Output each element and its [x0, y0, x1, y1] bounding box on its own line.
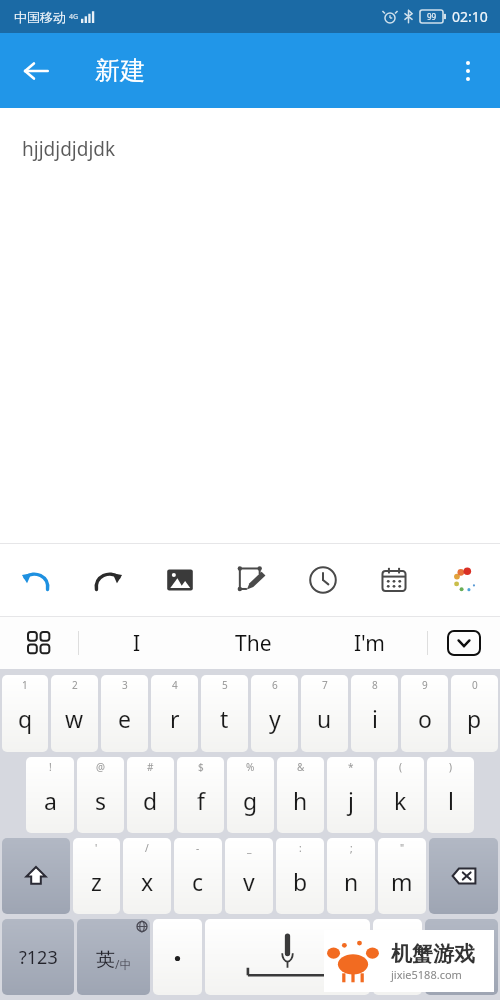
staticText: b: [293, 866, 308, 897]
staticText: 02:10: [452, 7, 488, 26]
staticText: 机蟹游戏: [391, 941, 475, 967]
staticText: 8: [372, 678, 378, 692]
button[interactable]: @: [77, 757, 124, 833]
staticText: r: [170, 703, 180, 734]
button[interactable]: 6: [251, 675, 298, 752]
staticText: /: [145, 841, 149, 855]
button[interactable]: I: [79, 617, 195, 669]
staticText: 6: [272, 678, 278, 692]
button[interactable]: ': [73, 838, 120, 914]
staticText: x: [141, 866, 154, 897]
staticText: n: [344, 866, 359, 897]
staticText: y: [269, 703, 281, 734]
staticText: %: [246, 760, 255, 774]
button[interactable]: Hide keyboard: [428, 617, 500, 669]
button[interactable]: Insert image: [144, 544, 216, 616]
button[interactable]: 8: [351, 675, 398, 752]
button[interactable]: Back: [12, 47, 60, 95]
staticText: t: [220, 703, 229, 734]
button[interactable]: I'm: [311, 617, 427, 669]
staticText: _: [247, 841, 252, 855]
button[interactable]: $: [177, 757, 224, 833]
staticText: @: [96, 760, 105, 774]
button[interactable]: ?: [373, 919, 422, 995]
button[interactable]: More options: [444, 47, 492, 95]
staticText: ?: [393, 942, 403, 972]
staticText: a: [44, 785, 57, 816]
button[interactable]: Reminder time: [287, 544, 358, 616]
button[interactable]: More tools: [429, 544, 500, 616]
button[interactable]: :: [276, 838, 324, 914]
button[interactable]: Switch language: [77, 919, 150, 995]
staticText: ': [95, 841, 98, 855]
staticText: (: [399, 760, 402, 774]
button[interactable]: *: [327, 757, 374, 833]
button[interactable]: Undo: [0, 544, 72, 616]
button[interactable]: 5: [201, 675, 248, 752]
staticText: 0: [472, 678, 478, 692]
staticText: 3: [122, 678, 128, 692]
staticText: 4G: [69, 12, 79, 22]
button[interactable]: &: [277, 757, 324, 833]
staticText: e: [118, 703, 131, 734]
staticText: 英: [96, 948, 115, 972]
staticText: v: [243, 866, 255, 897]
button[interactable]: The: [195, 617, 311, 669]
button[interactable]: Backspace: [429, 838, 498, 914]
staticText: 新建: [95, 55, 145, 86]
button[interactable]: 2: [51, 675, 98, 752]
button[interactable]: ): [427, 757, 474, 833]
staticText: 4: [172, 678, 178, 692]
button[interactable]: 4: [151, 675, 198, 752]
button[interactable]: #: [127, 757, 174, 833]
button[interactable]: Period: [153, 919, 202, 995]
button[interactable]: %: [227, 757, 274, 833]
button[interactable]: 1: [2, 675, 48, 752]
button[interactable]: Keyboard menu: [0, 617, 78, 669]
button[interactable]: 7: [301, 675, 348, 752]
staticText: s: [95, 785, 107, 816]
button[interactable]: ": [378, 838, 426, 914]
staticText: /中: [115, 956, 132, 972]
staticText: j: [348, 785, 354, 816]
staticText: d: [143, 785, 158, 816]
button[interactable]: 0: [451, 675, 498, 752]
staticText: ?123: [19, 945, 58, 970]
button[interactable]: Shift: [2, 838, 70, 914]
button[interactable]: -: [174, 838, 222, 914]
button[interactable]: Redo: [72, 544, 144, 616]
staticText: $: [198, 760, 204, 774]
staticText: 2: [72, 678, 78, 692]
button[interactable]: Enter: [425, 919, 498, 995]
button[interactable]: (: [377, 757, 424, 833]
staticText: The: [235, 629, 272, 658]
button[interactable]: Space: [205, 919, 370, 995]
button[interactable]: Handwriting: [216, 544, 287, 616]
button[interactable]: ;: [327, 838, 375, 914]
staticText: #: [147, 760, 154, 774]
staticText: :: [299, 841, 302, 855]
staticText: 中国移动: [14, 9, 66, 25]
staticText: z: [91, 866, 102, 897]
staticText: q: [18, 703, 33, 734]
staticText: ): [449, 760, 452, 774]
staticText: g: [243, 785, 258, 816]
staticText: ;: [350, 841, 353, 855]
staticText: w: [65, 703, 84, 734]
button[interactable]: hjjdjdjdjdk: [0, 108, 500, 543]
button[interactable]: 9: [401, 675, 448, 752]
button[interactable]: ?123: [2, 919, 74, 995]
staticText: 1: [22, 678, 28, 692]
button[interactable]: !: [26, 757, 74, 833]
button[interactable]: Calendar: [358, 544, 429, 616]
staticText: 5: [222, 678, 228, 692]
button[interactable]: _: [225, 838, 273, 914]
button[interactable]: 3: [101, 675, 148, 752]
staticText: 7: [322, 678, 328, 692]
staticText: i: [372, 703, 378, 734]
staticText: !: [49, 760, 52, 774]
button[interactable]: /: [123, 838, 171, 914]
staticText: c: [192, 866, 204, 897]
staticText: p: [467, 703, 482, 734]
staticText: f: [197, 785, 205, 816]
